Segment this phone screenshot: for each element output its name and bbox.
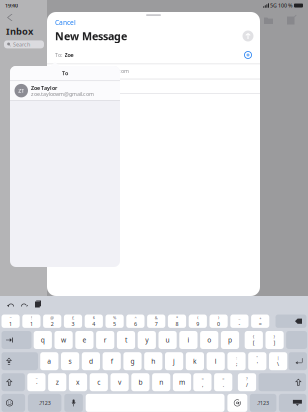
staticText: Zoe (64, 51, 73, 59)
button[interactable]: Back (0, 11, 13, 22)
button[interactable]: New message (287, 15, 296, 24)
button[interactable]: v (110, 373, 129, 391)
staticText: a (47, 357, 51, 366)
button[interactable]: " (248, 352, 266, 370)
staticText: 7 (155, 320, 158, 327)
button[interactable]: Send (241, 29, 254, 42)
button[interactable]: l (207, 352, 225, 370)
staticText: $ (93, 315, 95, 320)
staticText: @ (50, 315, 54, 320)
button[interactable]: c (90, 373, 108, 391)
button[interactable]: < (193, 373, 211, 391)
button[interactable]: _ (230, 314, 248, 328)
button[interactable]: { (245, 331, 263, 349)
button[interactable]: Add contact (243, 50, 253, 60)
button[interactable]: p (221, 331, 239, 349)
button[interactable]: b (131, 373, 149, 391)
button[interactable]: u (158, 331, 177, 349)
button[interactable]: n (152, 373, 170, 391)
button[interactable]: ZT (10, 81, 120, 100)
button[interactable]: ~ (1, 314, 20, 328)
button[interactable]: $ (85, 314, 103, 328)
button[interactable]: Numbers (28, 394, 61, 412)
staticText: To: (55, 51, 62, 59)
staticText: Zoe Taylor (31, 84, 57, 91)
button[interactable]: a (40, 352, 58, 370)
staticText: i (187, 336, 189, 344)
button[interactable]: Paste (33, 298, 43, 309)
button[interactable]: f (103, 352, 121, 370)
button[interactable]: o (200, 331, 218, 349)
button[interactable]: Emoji (1, 394, 25, 412)
button[interactable]: ? (238, 373, 256, 391)
button[interactable]: Cancel (53, 17, 78, 28)
button[interactable]: > (214, 373, 232, 391)
button[interactable]: £ (64, 314, 82, 328)
button[interactable]: s (61, 352, 79, 370)
button[interactable]: & (147, 314, 165, 328)
staticText: x (76, 378, 80, 387)
button[interactable]: + (251, 314, 269, 328)
staticText: ^ (134, 315, 136, 320)
button[interactable]: Return (288, 352, 307, 370)
staticText: 4 (92, 320, 95, 327)
button[interactable]: Shift (259, 373, 306, 391)
staticText: , (202, 381, 203, 388)
button[interactable]: % (105, 314, 124, 328)
button[interactable]: Dictate (64, 394, 83, 412)
button[interactable]: } (265, 331, 284, 349)
staticText: r (104, 336, 107, 344)
button[interactable]: i (179, 331, 197, 349)
button[interactable]: y (138, 331, 156, 349)
button[interactable]: k (186, 352, 204, 370)
staticText: 5G 100 % (269, 2, 293, 9)
button[interactable]: x (69, 373, 87, 391)
staticText: Subject: (55, 82, 74, 90)
staticText: 5 (113, 320, 116, 327)
staticText: ZT (18, 87, 24, 94)
staticText: l (215, 357, 217, 366)
staticText: n (159, 378, 163, 387)
button[interactable]: Delete (275, 314, 306, 328)
button[interactable]: Shift (1, 373, 25, 391)
button[interactable]: Mailboxes (264, 16, 273, 24)
button[interactable]: * (168, 314, 186, 328)
staticText: 1 (9, 320, 12, 327)
button[interactable]: r (96, 331, 114, 349)
button[interactable]: : (227, 352, 246, 370)
button[interactable]: Hide keyboard (279, 394, 306, 412)
button[interactable]: Numbers (250, 394, 276, 412)
button[interactable]: | (269, 352, 287, 370)
staticText: f (111, 357, 113, 366)
button[interactable]: ^ (126, 314, 144, 328)
staticText: + (259, 315, 261, 320)
staticText: p (228, 336, 232, 344)
button[interactable]: e (75, 331, 93, 349)
button[interactable]: Undo (5, 299, 16, 309)
staticText: v (118, 378, 121, 387)
button[interactable]: Caps lock (1, 352, 38, 370)
staticText: \ (277, 360, 279, 367)
button[interactable]: j (165, 352, 183, 370)
staticText: | (277, 355, 279, 360)
button[interactable]: m (173, 373, 191, 391)
button[interactable]: z (48, 373, 66, 391)
button[interactable]: @ (43, 314, 61, 328)
button[interactable]: ! (22, 314, 40, 328)
button[interactable]: d (82, 352, 100, 370)
button[interactable]: ~ (27, 373, 45, 391)
button[interactable]: q (34, 331, 52, 349)
button[interactable]: At sign (227, 394, 247, 412)
button[interactable]: Tab (1, 331, 31, 349)
button[interactable]: h (144, 352, 162, 370)
button[interactable]: ) (209, 314, 228, 328)
button[interactable]: g (123, 352, 142, 370)
button[interactable]: t (117, 331, 135, 349)
button[interactable]: Redo (19, 299, 30, 309)
staticText: ! (31, 315, 32, 320)
button[interactable]: ( (189, 314, 207, 328)
button[interactable]: w (54, 331, 73, 349)
